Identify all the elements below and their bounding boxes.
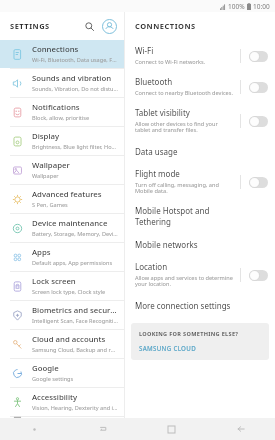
staticText: Display bbox=[32, 131, 60, 142]
staticText: Battery, Storage, Memory, Device se… bbox=[32, 230, 118, 238]
button[interactable]: Biometrics and security bbox=[0, 301, 124, 329]
staticText: S Pen, Games bbox=[32, 201, 68, 209]
staticText: Notifications bbox=[32, 102, 80, 113]
button[interactable]: Display bbox=[0, 127, 124, 155]
staticText: Biometrics and security bbox=[32, 305, 118, 316]
button[interactable]: Bluetooth switch bbox=[247, 80, 269, 94]
staticText: Data usage bbox=[135, 146, 178, 157]
button[interactable]: Wallpaper bbox=[0, 156, 124, 184]
button[interactable]: Tablet visibility switch bbox=[247, 114, 269, 128]
staticText: 10:00 bbox=[253, 2, 270, 11]
staticText: Accessibility bbox=[32, 392, 78, 403]
button[interactable]: Connections bbox=[0, 40, 124, 68]
button[interactable]: Hide keyboard bbox=[68, 418, 137, 440]
button[interactable]: Notifications bbox=[0, 98, 124, 126]
button[interactable]: Recents bbox=[137, 418, 206, 440]
button[interactable]: Accessibility bbox=[0, 388, 124, 416]
button[interactable]: Apps bbox=[0, 243, 124, 271]
staticText: SAMSUNG CLOUD bbox=[139, 344, 196, 352]
staticText: Flight mode bbox=[135, 168, 180, 179]
button[interactable]: Data usage bbox=[125, 139, 275, 163]
staticText: Bluetooth bbox=[135, 76, 173, 87]
staticText: Block, allow, prioritise bbox=[32, 114, 90, 122]
button[interactable]: Cloud and accounts bbox=[0, 330, 124, 358]
button[interactable]: Flight mode switch bbox=[247, 175, 269, 189]
staticText: Vision, Hearing, Dexterity and intera… bbox=[32, 404, 118, 412]
staticText: Mobile Hotspot and Tethering bbox=[135, 205, 241, 227]
button[interactable]: Back bbox=[206, 418, 275, 440]
button[interactable]: Device maintenance bbox=[0, 214, 124, 242]
staticText: Google bbox=[32, 363, 59, 374]
staticText: Screen lock type, Clock style bbox=[32, 288, 106, 296]
button[interactable]: SAMSUNG CLOUD bbox=[139, 344, 196, 352]
staticText: Default apps, App permissions bbox=[32, 259, 113, 267]
staticText: Tablet visibility bbox=[135, 107, 190, 118]
staticText: Lock screen bbox=[32, 276, 76, 287]
button[interactable]: Wi-Fi bbox=[125, 40, 275, 71]
staticText: More connection settings bbox=[135, 300, 231, 311]
button[interactable]: Location switch bbox=[247, 268, 269, 282]
staticText: Wi-Fi, Bluetooth, Data usage, Fligh… bbox=[32, 56, 118, 64]
button[interactable]: Wi-Fi switch bbox=[247, 49, 269, 63]
staticText: Connect to nearby Bluetooth devices. bbox=[135, 89, 233, 97]
staticText: Wallpaper bbox=[32, 160, 70, 171]
staticText: Google settings bbox=[32, 375, 74, 383]
button[interactable]: Google bbox=[0, 359, 124, 387]
staticText: Turn off calling, messaging, and Mobile … bbox=[135, 181, 234, 195]
staticText: Samsung Cloud, Backup and restor… bbox=[32, 346, 118, 354]
staticText: Sounds and vibration bbox=[32, 73, 112, 84]
button[interactable]: Advanced features bbox=[0, 185, 124, 213]
staticText: Connections bbox=[32, 44, 79, 55]
button[interactable]: Tablet visibility bbox=[125, 102, 275, 139]
staticText: Wallpaper bbox=[32, 172, 59, 180]
button[interactable]: Bluetooth bbox=[125, 71, 275, 102]
staticText: Brightness, Blue light filter, Home sc… bbox=[32, 143, 118, 151]
staticText: LOOKING FOR SOMETHING ELSE? bbox=[139, 330, 239, 338]
staticText: Device maintenance bbox=[32, 218, 108, 229]
staticText: 100% bbox=[228, 2, 245, 11]
button[interactable]: Flight mode bbox=[125, 163, 275, 200]
button[interactable]: Location bbox=[125, 256, 275, 293]
staticText: Sounds, Vibration, Do not disturb bbox=[32, 85, 118, 93]
staticText: Intelligent Scan, Face Recognition,… bbox=[32, 317, 118, 325]
staticText: SETTINGS bbox=[10, 21, 50, 31]
staticText: Allow other devices to find your tablet … bbox=[135, 120, 234, 134]
staticText: Apps bbox=[32, 247, 51, 258]
button[interactable]: Mobile networks bbox=[125, 232, 275, 256]
staticText: Cloud and accounts bbox=[32, 334, 106, 345]
staticText: Connect to Wi-Fi networks. bbox=[135, 58, 206, 66]
button[interactable]: General management bbox=[0, 417, 124, 418]
button[interactable]: More connection settings bbox=[125, 293, 275, 317]
button[interactable]: Lock screen bbox=[0, 272, 124, 300]
button[interactable]: Sounds and vibration bbox=[0, 69, 124, 97]
staticText: Mobile networks bbox=[135, 239, 198, 250]
button[interactable]: Mobile Hotspot and Tethering bbox=[125, 200, 275, 232]
staticText: Allow apps and services to determine you… bbox=[135, 274, 234, 288]
staticText: Wi-Fi bbox=[135, 45, 154, 56]
staticText: CONNECTIONS bbox=[135, 21, 196, 31]
button[interactable]: Account bbox=[100, 17, 118, 35]
button[interactable]: Search bbox=[81, 18, 97, 34]
staticText: Advanced features bbox=[32, 189, 102, 200]
staticText: Location bbox=[135, 261, 168, 272]
